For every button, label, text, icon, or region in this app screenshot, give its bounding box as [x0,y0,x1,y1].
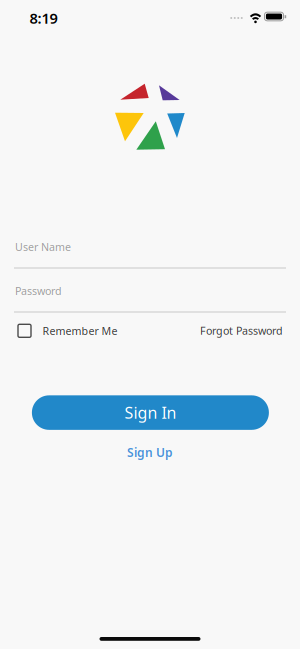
button[interactable]: Sign In [32,395,269,430]
staticText: User Name [15,240,71,254]
button[interactable]: Password [0,281,300,301]
staticText: Forgot Password [200,323,283,338]
staticText: Password [15,284,62,298]
staticText: 8:19 [29,8,57,28]
staticText: Sign In [124,402,176,423]
button[interactable]: Remember Me [0,321,300,341]
button[interactable]: Sign Up [127,443,173,461]
staticText: Sign Up [127,444,173,460]
button[interactable]: Forgot Password [0,320,300,340]
staticText: Remember Me [42,324,117,338]
button[interactable]: User Name [0,237,300,257]
